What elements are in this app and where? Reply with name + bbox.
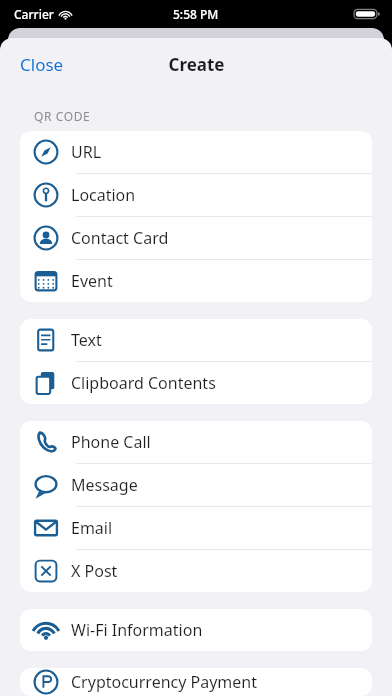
staticText: Location [71, 184, 136, 206]
button[interactable]: Event [20, 260, 372, 302]
button[interactable]: Contact Card [20, 217, 372, 259]
button[interactable]: URL [20, 131, 372, 173]
button[interactable]: Message [20, 464, 372, 506]
button[interactable]: Phone Call [20, 421, 372, 463]
staticText: Message [71, 474, 138, 496]
staticText: Phone Call [71, 431, 151, 453]
button[interactable]: Close [10, 47, 74, 82]
staticText: Carrier [14, 6, 54, 22]
staticText: Wi-Fi Information [71, 619, 203, 641]
button[interactable]: Location [20, 174, 372, 216]
button[interactable]: Text [20, 319, 372, 361]
staticText: Event [71, 270, 113, 292]
staticText: URL [71, 141, 102, 163]
staticText: X Post [71, 560, 118, 582]
staticText: Create [168, 53, 225, 76]
button[interactable]: Clipboard Contents [20, 362, 372, 404]
staticText: Contact Card [71, 227, 169, 249]
staticText: QR CODE [34, 108, 91, 124]
button[interactable]: Wi-Fi Information [20, 609, 372, 651]
staticText: Email [71, 517, 113, 539]
staticText: Close [20, 53, 64, 76]
staticText: Text [71, 329, 102, 351]
staticText: Cryptocurrency Payment [71, 671, 258, 693]
staticText: Clipboard Contents [71, 372, 216, 394]
button[interactable]: Cryptocurrency Payment [20, 668, 372, 696]
button[interactable]: Email [20, 507, 372, 549]
button[interactable]: X Post [20, 550, 372, 592]
staticText: 5:58 PM [173, 6, 219, 22]
